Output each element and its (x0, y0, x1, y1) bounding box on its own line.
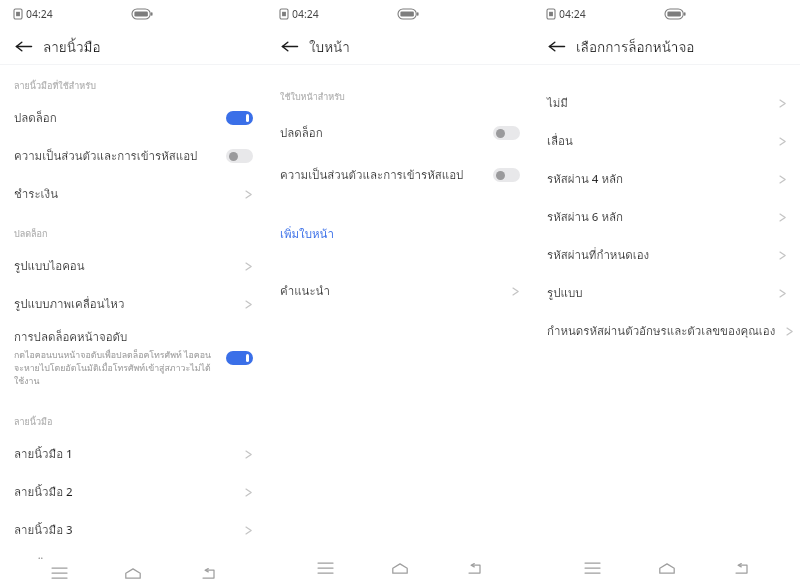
button[interactable]: ปลดล็อก (266, 114, 533, 152)
staticText: รูปแบบไอคอน (14, 257, 85, 275)
button[interactable]: ความเป็นส่วนตัวและการเข้ารหัสแอป (266, 156, 533, 194)
button[interactable]: Switch off (493, 168, 520, 182)
staticText: ปลดล็อก (14, 109, 57, 127)
button[interactable]: Back (543, 33, 569, 59)
button[interactable]: กำหนดรหัสผ่านตัวอักษรและตัวเลขของคุณเอง (533, 312, 800, 350)
button[interactable]: Home (117, 561, 149, 585)
button[interactable]: Switch on (226, 111, 253, 125)
staticText: ชำระเงิน (14, 185, 59, 203)
staticText: ลายนิ้วมือ 2 (14, 483, 73, 501)
button[interactable]: ลายนิ้วมือ 3 (0, 511, 266, 549)
button[interactable]: ปลดล็อก (0, 99, 266, 137)
staticText: ไม่มี (547, 94, 568, 112)
button[interactable]: ความเป็นส่วนตัวและการเข้ารหัสแอป (0, 137, 266, 175)
staticText: กำหนดรหัสผ่านตัวอักษรและตัวเลขของคุณเอง (547, 322, 776, 340)
staticText: เลื่อน (547, 132, 573, 150)
button[interactable]: คำแนะนำ (266, 272, 533, 310)
button[interactable]: Recent apps (309, 552, 341, 584)
staticText: รหัสผ่าน 6 หลัก (547, 208, 623, 226)
staticText: 04:24 (292, 7, 319, 21)
button[interactable]: Back (458, 552, 490, 584)
button[interactable]: Switch off (226, 149, 253, 163)
button[interactable]: Switch off (493, 126, 520, 140)
staticText: คำแนะนำ (280, 282, 330, 300)
button[interactable]: Recent apps (576, 552, 608, 584)
button[interactable]: Switch on (226, 351, 253, 365)
button[interactable]: Back (192, 561, 224, 585)
button[interactable]: รหัสผ่านที่กำหนดเอง (533, 236, 800, 274)
staticText: รูปแบบ (547, 284, 583, 302)
button[interactable]: Back (725, 552, 757, 584)
button[interactable]: Back (276, 33, 302, 59)
staticText: 04:24 (559, 7, 586, 21)
staticText: ความเป็นส่วนตัวและการเข้ารหัสแอป (14, 147, 198, 165)
staticText: รูปแบบภาพเคลื่อนไหว (14, 295, 125, 313)
staticText: ลายนิ้วมือ 1 (14, 445, 73, 463)
button[interactable]: Home (651, 552, 683, 584)
staticText: .. (38, 549, 44, 561)
button[interactable]: รูปแบบไอคอน (0, 247, 266, 285)
button[interactable]: เพิ่มใบหน้า (266, 222, 533, 246)
staticText: ปลดล็อก (280, 124, 323, 142)
staticText: กดไอคอนบนหน้าจอดับเพื่อปลดล็อคโทรศัพท์ ไ… (14, 348, 211, 388)
button[interactable]: รหัสผ่าน 4 หลัก (533, 160, 800, 198)
staticText: 04:24 (26, 7, 53, 21)
button[interactable]: รูปแบบ (533, 274, 800, 312)
staticText: รหัสผ่านที่กำหนดเอง (547, 246, 650, 264)
button[interactable]: รูปแบบภาพเคลื่อนไหว (0, 285, 266, 323)
staticText: รหัสผ่าน 4 หลัก (547, 170, 623, 188)
staticText: ใบหน้า (309, 36, 350, 57)
button[interactable]: Recent apps (43, 561, 75, 585)
staticText: ลายนิ้วมือที่ใช้สำหรับ (14, 79, 96, 93)
button[interactable]: ไม่มี (533, 84, 800, 122)
button[interactable]: Home (384, 552, 416, 584)
staticText: ความเป็นส่วนตัวและการเข้ารหัสแอป (280, 166, 464, 184)
staticText: ลายนิ้วมือ (14, 415, 53, 429)
button[interactable]: ลายนิ้วมือ 2 (0, 473, 266, 511)
button[interactable]: Back (10, 33, 36, 59)
staticText: การปลดล็อคหน้าจอดับ (14, 328, 128, 346)
staticText: เลือกการล็อกหน้าจอ (576, 36, 695, 57)
button[interactable]: รหัสผ่าน 6 หลัก (533, 198, 800, 236)
staticText: ใช้ใบหน้าสำหรับ (280, 90, 345, 104)
staticText: ลายนิ้วมือ (43, 36, 101, 57)
staticText: ปลดล็อก (14, 227, 48, 241)
staticText: ลายนิ้วมือ 3 (14, 521, 73, 539)
button[interactable]: เลื่อน (533, 122, 800, 160)
staticText: เพิ่มใบหน้า (280, 225, 334, 243)
button[interactable]: การปลดล็อคหน้าจอดับ (0, 323, 266, 393)
button[interactable]: ชำระเงิน (0, 175, 266, 213)
button[interactable]: ลายนิ้วมือ 1 (0, 435, 266, 473)
